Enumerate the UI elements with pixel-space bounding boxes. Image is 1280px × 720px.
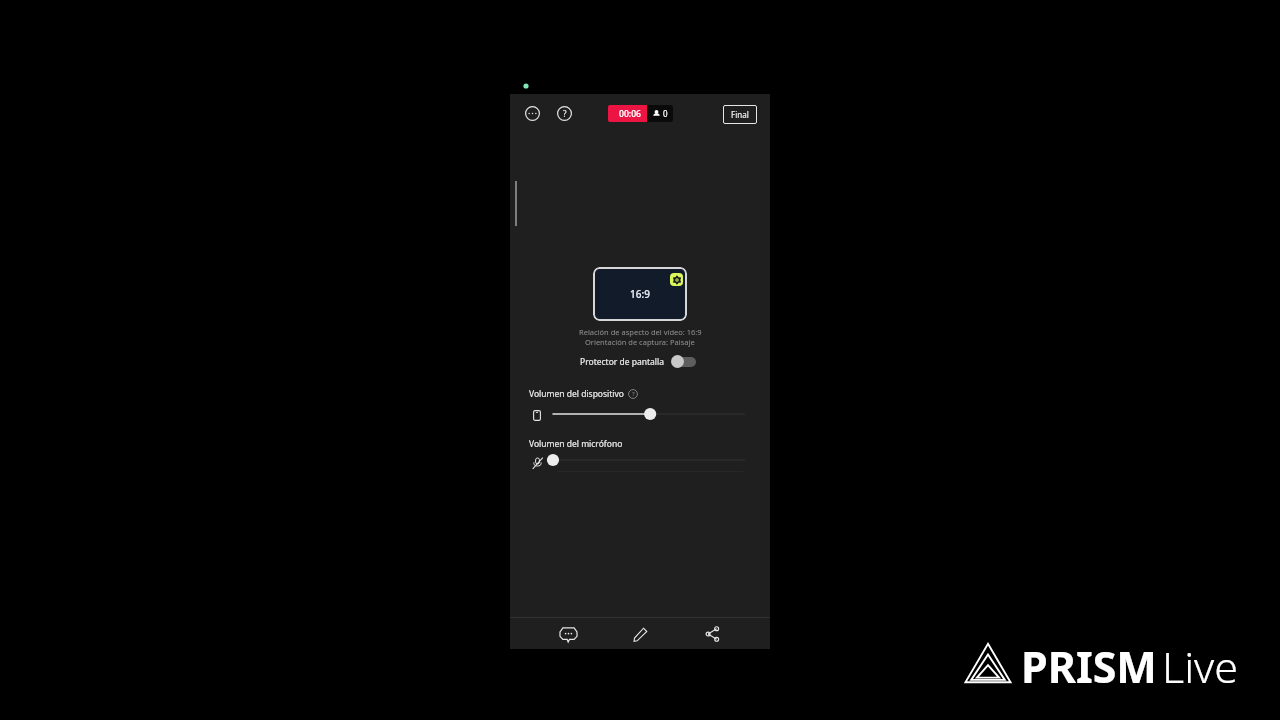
button[interactable]: 00:06: [608, 105, 647, 122]
button[interactable]: 0: [647, 105, 673, 122]
staticText: Volumen del micrófono: [529, 438, 623, 450]
button[interactable]: More options: [523, 104, 542, 123]
button[interactable]: Aspect ratio settings: [670, 273, 683, 286]
staticText: Live: [1162, 637, 1239, 696]
button[interactable]: Final: [723, 105, 757, 124]
staticText: Relación de aspecto del vídeo: 16:9: [579, 327, 702, 337]
staticText: Protector de pantalla: [580, 356, 664, 368]
staticText: 16:9: [630, 287, 650, 301]
button[interactable]: Share: [697, 619, 727, 649]
staticText: 0: [663, 108, 668, 119]
button[interactable]: Help: [555, 104, 574, 123]
staticText: Volumen del dispositivo: [529, 388, 624, 400]
staticText: Final: [731, 109, 749, 120]
button[interactable]: 16:9: [593, 267, 687, 321]
button[interactable]: Microphone volume slider: [553, 454, 745, 466]
staticText: PRISM: [1021, 637, 1157, 696]
button[interactable]: Device volume slider: [553, 408, 745, 420]
button[interactable]: Chat: [553, 619, 583, 649]
button[interactable]: Edit: [625, 619, 655, 649]
button[interactable]: Screen protector toggle: [671, 355, 696, 368]
staticText: ?: [632, 390, 635, 398]
staticText: ?: [563, 108, 567, 119]
button[interactable]: Device volume help: [628, 389, 638, 399]
staticText: 00:06: [619, 108, 642, 120]
staticText: Orientación de captura: Paisaje: [585, 337, 695, 347]
